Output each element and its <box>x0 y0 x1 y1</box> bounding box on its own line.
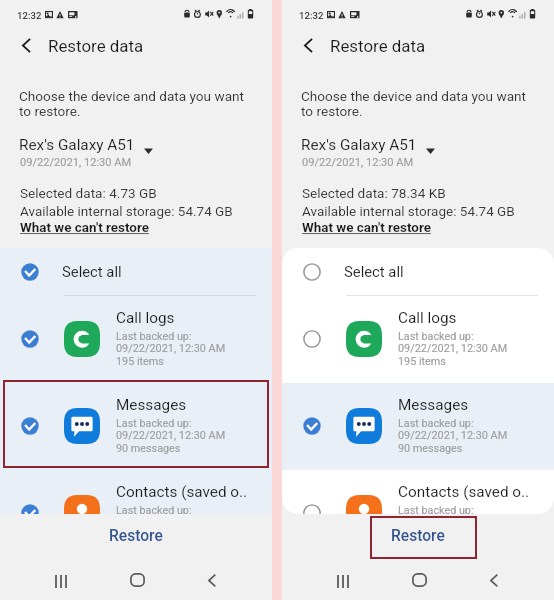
button[interactable]: Choose device <box>420 141 440 161</box>
staticText: Select all <box>62 263 122 280</box>
staticText: 12:32 <box>299 10 324 21</box>
staticText: Available internal storage: 54.74 GB <box>20 203 233 219</box>
button[interactable]: Messages <box>282 383 554 470</box>
staticText: Select all <box>344 263 404 280</box>
staticText: 195 items <box>116 355 164 368</box>
staticText: Last backed up: <box>116 417 192 430</box>
staticText: Restore <box>391 527 445 545</box>
button[interactable]: Back <box>473 559 515 600</box>
staticText: Contacts (saved o.. <box>398 483 530 501</box>
button[interactable]: Back <box>191 559 233 600</box>
staticText: Last backed up: <box>116 330 192 343</box>
staticText: 12:32 <box>17 10 42 21</box>
button[interactable]: Contacts (saved o.. <box>0 470 272 514</box>
staticText: Selected data: 4.73 GB <box>20 185 157 201</box>
button[interactable]: Call logs <box>282 296 554 383</box>
button[interactable]: Choose device <box>138 141 158 161</box>
button[interactable]: Call logs <box>0 296 272 383</box>
staticText: Rex's Galaxy A51 <box>301 136 417 154</box>
staticText: Last backed up: <box>398 417 474 430</box>
staticText: Last backed up: <box>398 504 474 514</box>
button[interactable]: Restore <box>79 515 193 557</box>
button[interactable]: What we can't restore <box>20 220 149 236</box>
staticText: 09/22/2021, 12:30 AM <box>398 342 508 355</box>
staticText: Choose the device and data you want to r… <box>19 88 245 119</box>
button[interactable]: Home <box>116 559 158 600</box>
staticText: Last backed up: <box>398 330 474 343</box>
button[interactable]: Select all <box>0 248 272 295</box>
staticText: Restore data <box>48 36 144 56</box>
button[interactable]: Navigate up <box>11 30 41 60</box>
button[interactable]: Recent apps <box>322 560 364 600</box>
staticText: 90 messages <box>116 442 181 455</box>
staticText: Last backed up: <box>116 504 192 514</box>
staticText: Messages <box>398 396 469 414</box>
staticText: Available internal storage: 54.74 GB <box>302 203 515 219</box>
staticText: Call logs <box>398 309 457 327</box>
staticText: Contacts (saved o.. <box>116 483 248 501</box>
staticText: 09/22/2021, 12:30 AM <box>20 156 132 169</box>
staticText: Call logs <box>116 309 175 327</box>
button[interactable]: Restore <box>361 515 475 557</box>
button[interactable]: Select all <box>282 248 554 295</box>
button[interactable]: What we can't restore <box>302 220 431 236</box>
staticText: Restore data <box>330 36 426 56</box>
staticText: What we can't restore <box>20 220 149 236</box>
staticText: Messages <box>116 396 187 414</box>
staticText: 195 items <box>398 355 446 368</box>
staticText: 09/22/2021, 12:30 AM <box>116 342 226 355</box>
button[interactable]: Navigate up <box>293 30 323 60</box>
staticText: Rex's Galaxy A51 <box>19 136 135 154</box>
staticText: What we can't restore <box>302 220 431 236</box>
button[interactable]: Contacts (saved o.. <box>282 470 554 514</box>
staticText: 09/22/2021, 12:30 AM <box>398 429 508 442</box>
staticText: Choose the device and data you want to r… <box>301 88 527 119</box>
button[interactable]: Messages <box>0 383 272 470</box>
button[interactable]: Recent apps <box>40 560 82 600</box>
button[interactable]: Home <box>398 559 440 600</box>
staticText: 09/22/2021, 12:30 AM <box>302 156 414 169</box>
staticText: 09/22/2021, 12:30 AM <box>116 429 226 442</box>
staticText: 90 messages <box>398 442 463 455</box>
staticText: Restore <box>109 527 163 545</box>
staticText: Selected data: 78.34 KB <box>302 185 446 201</box>
